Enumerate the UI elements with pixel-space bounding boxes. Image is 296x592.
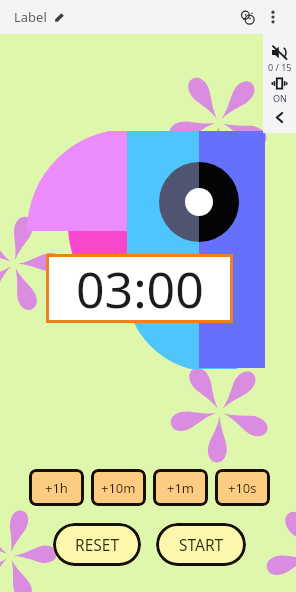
button[interactable]: Vibrate: [263, 75, 296, 103]
button[interactable]: +1h: [29, 469, 84, 506]
staticText: +10s: [228, 479, 257, 497]
button[interactable]: Randomize theme: [234, 4, 260, 30]
staticText: 03:00: [76, 255, 204, 323]
button[interactable]: +1m: [153, 469, 208, 506]
button[interactable]: +10s: [215, 469, 270, 506]
button[interactable]: +10m: [91, 469, 146, 506]
staticText: RESET: [75, 534, 120, 555]
button[interactable]: Label: [10, 4, 70, 30]
button[interactable]: START: [156, 523, 246, 566]
staticText: START: [179, 534, 224, 555]
button[interactable]: RESET: [53, 523, 141, 566]
button[interactable]: 03:00: [46, 254, 233, 323]
staticText: ON: [273, 92, 287, 104]
staticText: 0 / 15: [268, 61, 292, 73]
staticText: +1m: [167, 479, 195, 497]
button[interactable]: Collapse: [271, 109, 288, 126]
staticText: Label: [14, 8, 47, 26]
staticText: +10m: [101, 479, 136, 497]
button[interactable]: More options: [260, 4, 286, 30]
button[interactable]: Mute: [263, 42, 296, 71]
staticText: +1h: [45, 479, 68, 497]
